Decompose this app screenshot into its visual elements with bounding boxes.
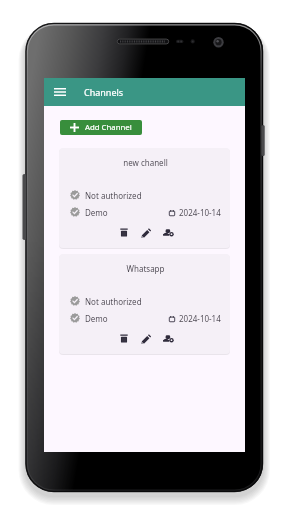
staticText: Not authorized xyxy=(85,190,142,201)
button[interactable]: Edit channel xyxy=(139,225,153,239)
button[interactable]: Delete channel xyxy=(117,225,131,239)
staticText: Not authorized xyxy=(85,296,142,307)
staticText: Channels xyxy=(84,86,124,98)
staticText: 2024-10-14 xyxy=(179,313,221,324)
staticText: new chanell xyxy=(70,157,221,168)
button[interactable]: new chanell xyxy=(59,148,230,248)
button[interactable]: Whatsapp xyxy=(59,254,230,354)
staticText: Demo xyxy=(85,313,108,324)
button[interactable]: Delete channel xyxy=(117,331,131,345)
button[interactable]: Open navigation menu xyxy=(51,83,69,101)
button[interactable]: Add Channel xyxy=(60,120,142,135)
staticText: Demo xyxy=(85,207,108,218)
staticText: Whatsapp xyxy=(70,263,221,274)
button[interactable]: Manage channel users xyxy=(161,331,175,345)
button[interactable]: Manage channel users xyxy=(161,225,175,239)
staticText: Add Channel xyxy=(85,122,132,133)
staticText: 2024-10-14 xyxy=(179,207,221,218)
button[interactable]: Edit channel xyxy=(139,331,153,345)
